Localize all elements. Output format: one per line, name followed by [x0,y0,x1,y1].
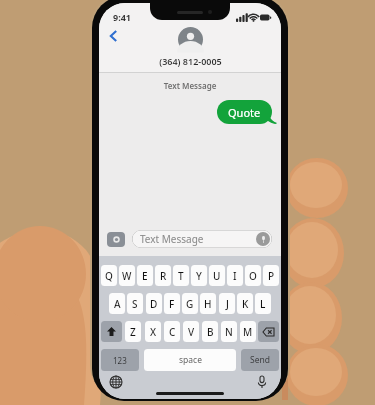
button[interactable]: G [182,293,198,314]
button[interactable]: N [221,321,237,342]
button[interactable]: Change keyboard [108,374,124,390]
staticText: space [179,354,202,366]
staticText: T [178,269,184,283]
button[interactable]: O [245,265,261,286]
staticText: Z [130,325,136,339]
button[interactable]: S [127,293,143,314]
staticText: A [114,297,121,311]
staticText: Send [250,354,270,366]
staticText: V [188,325,195,339]
button[interactable]: W [119,265,135,286]
staticText: I [233,269,237,283]
button[interactable]: V [183,321,199,342]
staticText: M [243,325,253,339]
button[interactable]: D [146,293,162,314]
staticText: Text Message [99,80,281,91]
button[interactable]: Shift [101,321,122,342]
button[interactable]: Audio message [256,232,270,246]
button[interactable]: L [255,293,271,314]
staticText: Text Message [140,232,204,246]
button[interactable]: C [164,321,180,342]
button[interactable]: Camera [107,232,125,247]
staticText: Q [105,269,113,283]
button[interactable]: A [109,293,125,314]
button[interactable]: J [219,293,235,314]
button[interactable]: Backspace [258,321,279,342]
staticText: O [249,269,257,283]
staticText: P [268,269,275,283]
button[interactable]: T [173,265,189,286]
staticText: R [160,269,167,283]
staticText: F [169,297,175,311]
button[interactable]: I [227,265,243,286]
button[interactable]: B [202,321,218,342]
staticText: B [207,325,214,339]
button[interactable]: space [144,349,236,371]
button[interactable]: K [237,293,253,314]
button[interactable]: R [155,265,171,286]
staticText: (364) 812-0005 [159,55,222,67]
staticText: Quote [228,105,261,120]
staticText: N [225,325,233,339]
staticText: J [226,297,229,311]
staticText: W [122,269,132,283]
button[interactable]: (364) 812-0005 [159,27,222,67]
staticText: 9:41 [113,11,131,23]
button[interactable]: 123 [101,349,139,371]
button[interactable]: F [164,293,180,314]
button[interactable]: Y [191,265,207,286]
staticText: U [213,269,221,283]
button[interactable]: Text Message [132,230,272,248]
button[interactable]: Q [101,265,117,286]
button[interactable]: X [145,321,161,342]
staticText: H [204,297,212,311]
button[interactable]: H [200,293,216,314]
staticText: D [150,297,158,311]
staticText: K [242,297,249,311]
button[interactable]: Back [103,25,125,47]
staticText: G [186,297,194,311]
button[interactable]: P [263,265,279,286]
button[interactable]: Send [241,349,279,371]
staticText: S [132,297,138,311]
button[interactable]: Dictate [254,374,270,390]
button[interactable]: Z [125,321,141,342]
staticText: C [169,325,176,339]
staticText: 123 [113,355,127,366]
button[interactable]: E [137,265,153,286]
staticText: E [142,269,148,283]
staticText: X [150,325,157,339]
button[interactable]: U [209,265,225,286]
staticText: L [260,297,266,311]
staticText: Y [196,269,202,283]
button[interactable]: M [240,321,256,342]
